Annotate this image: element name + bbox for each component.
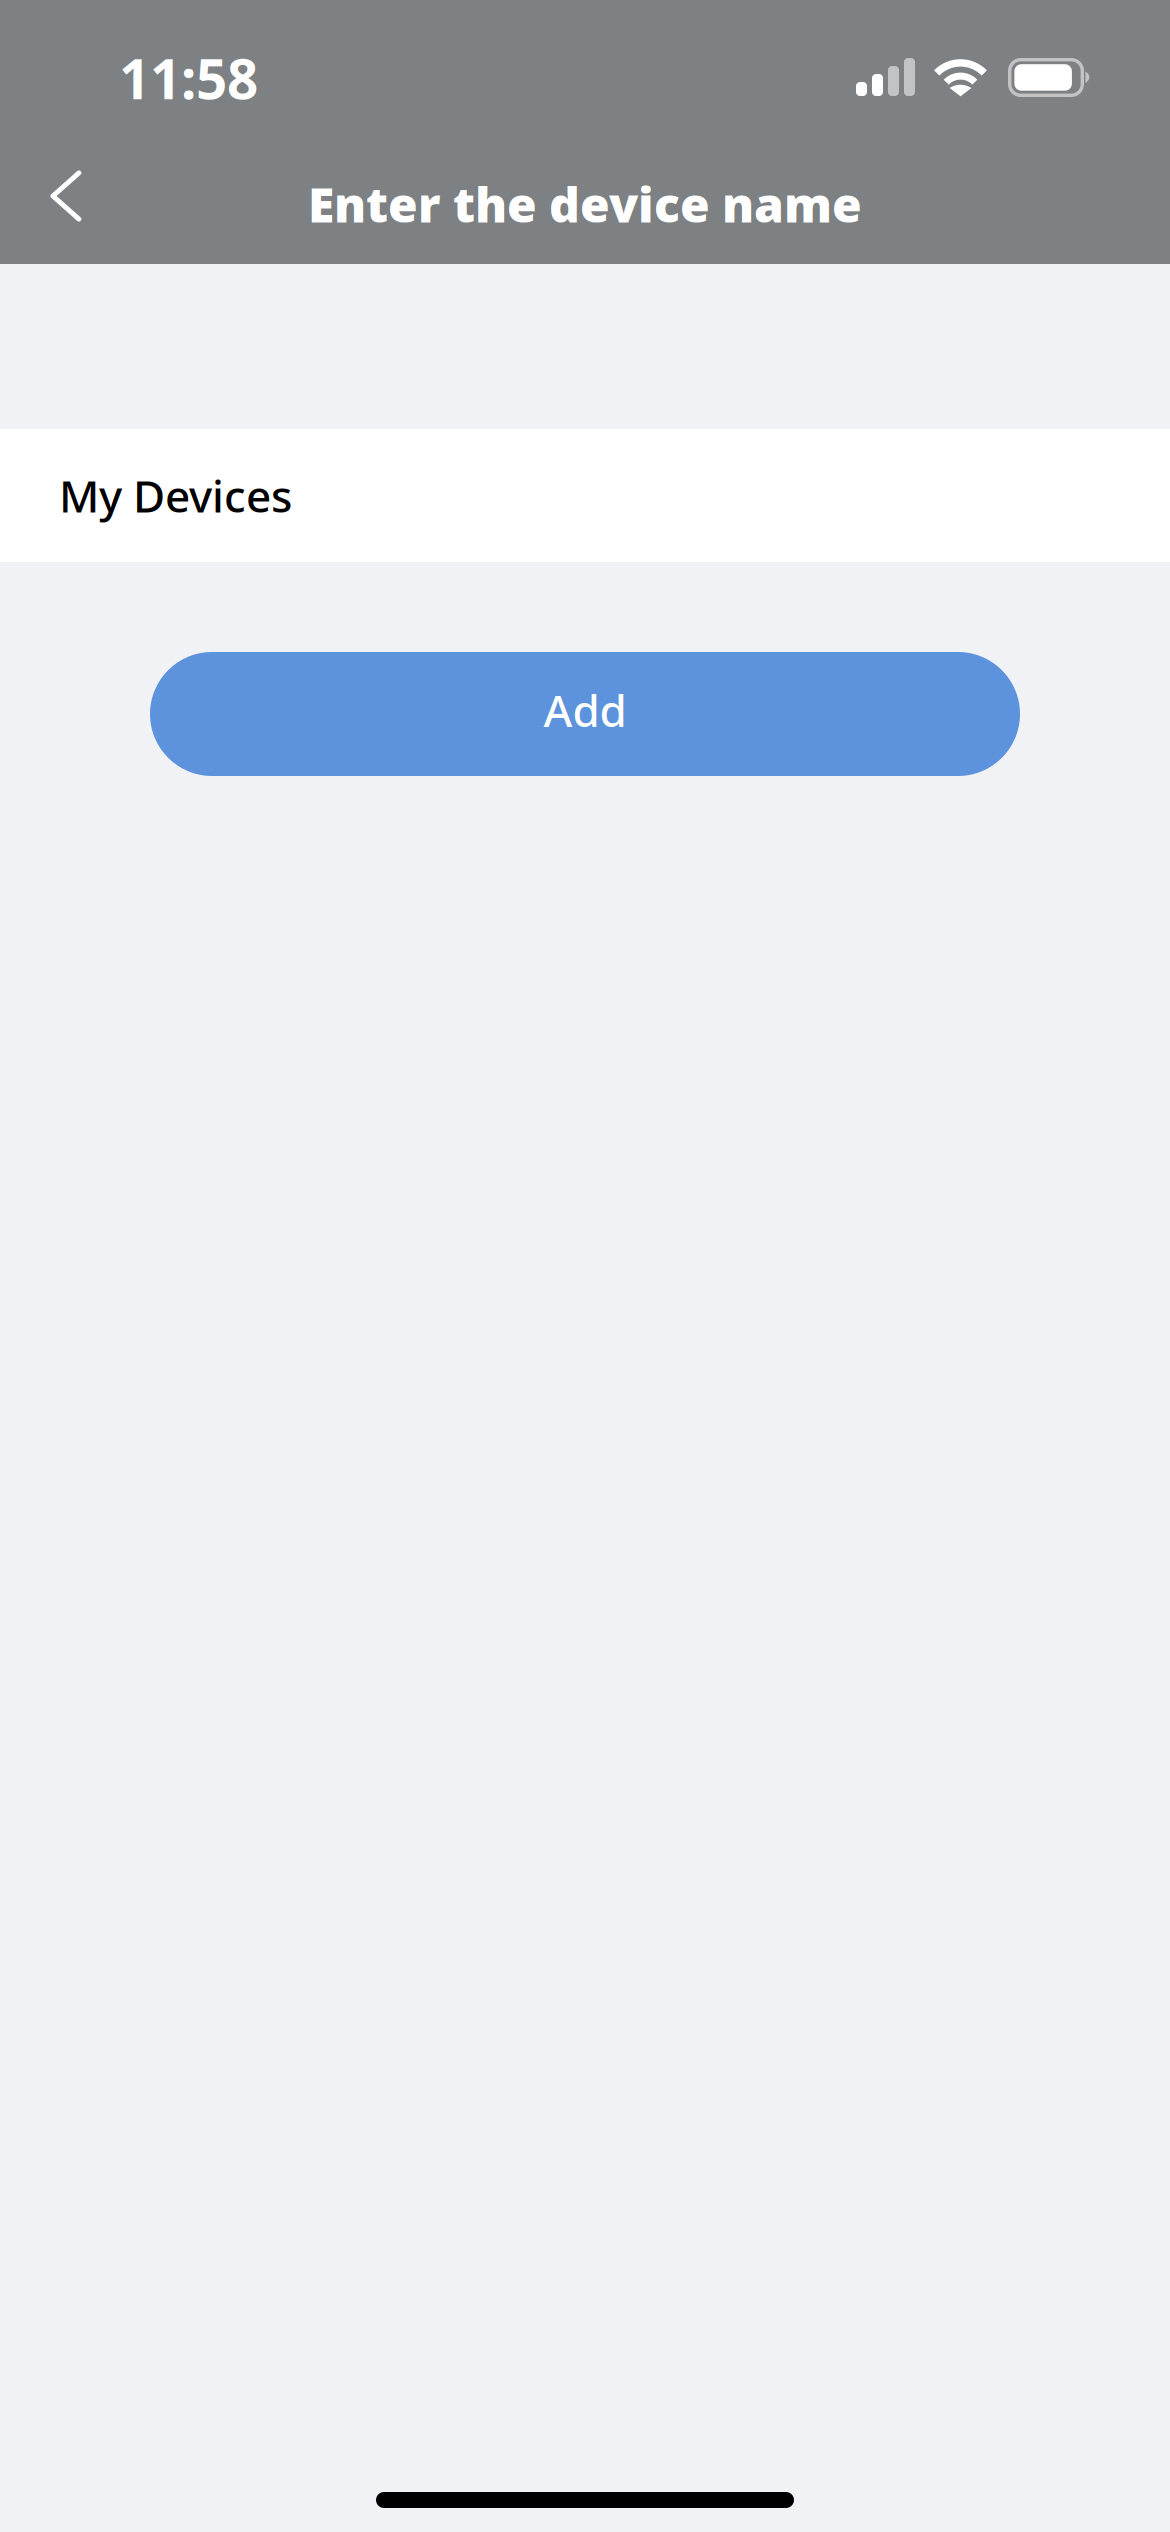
button[interactable]: Add	[150, 652, 1020, 776]
staticText: Enter the device name	[308, 172, 862, 236]
button[interactable]: Back	[18, 144, 114, 248]
button[interactable]: My Devices	[0, 429, 1170, 562]
staticText: Add	[543, 681, 626, 739]
staticText: My Devices	[59, 466, 292, 525]
staticText: 11:58	[119, 42, 258, 114]
